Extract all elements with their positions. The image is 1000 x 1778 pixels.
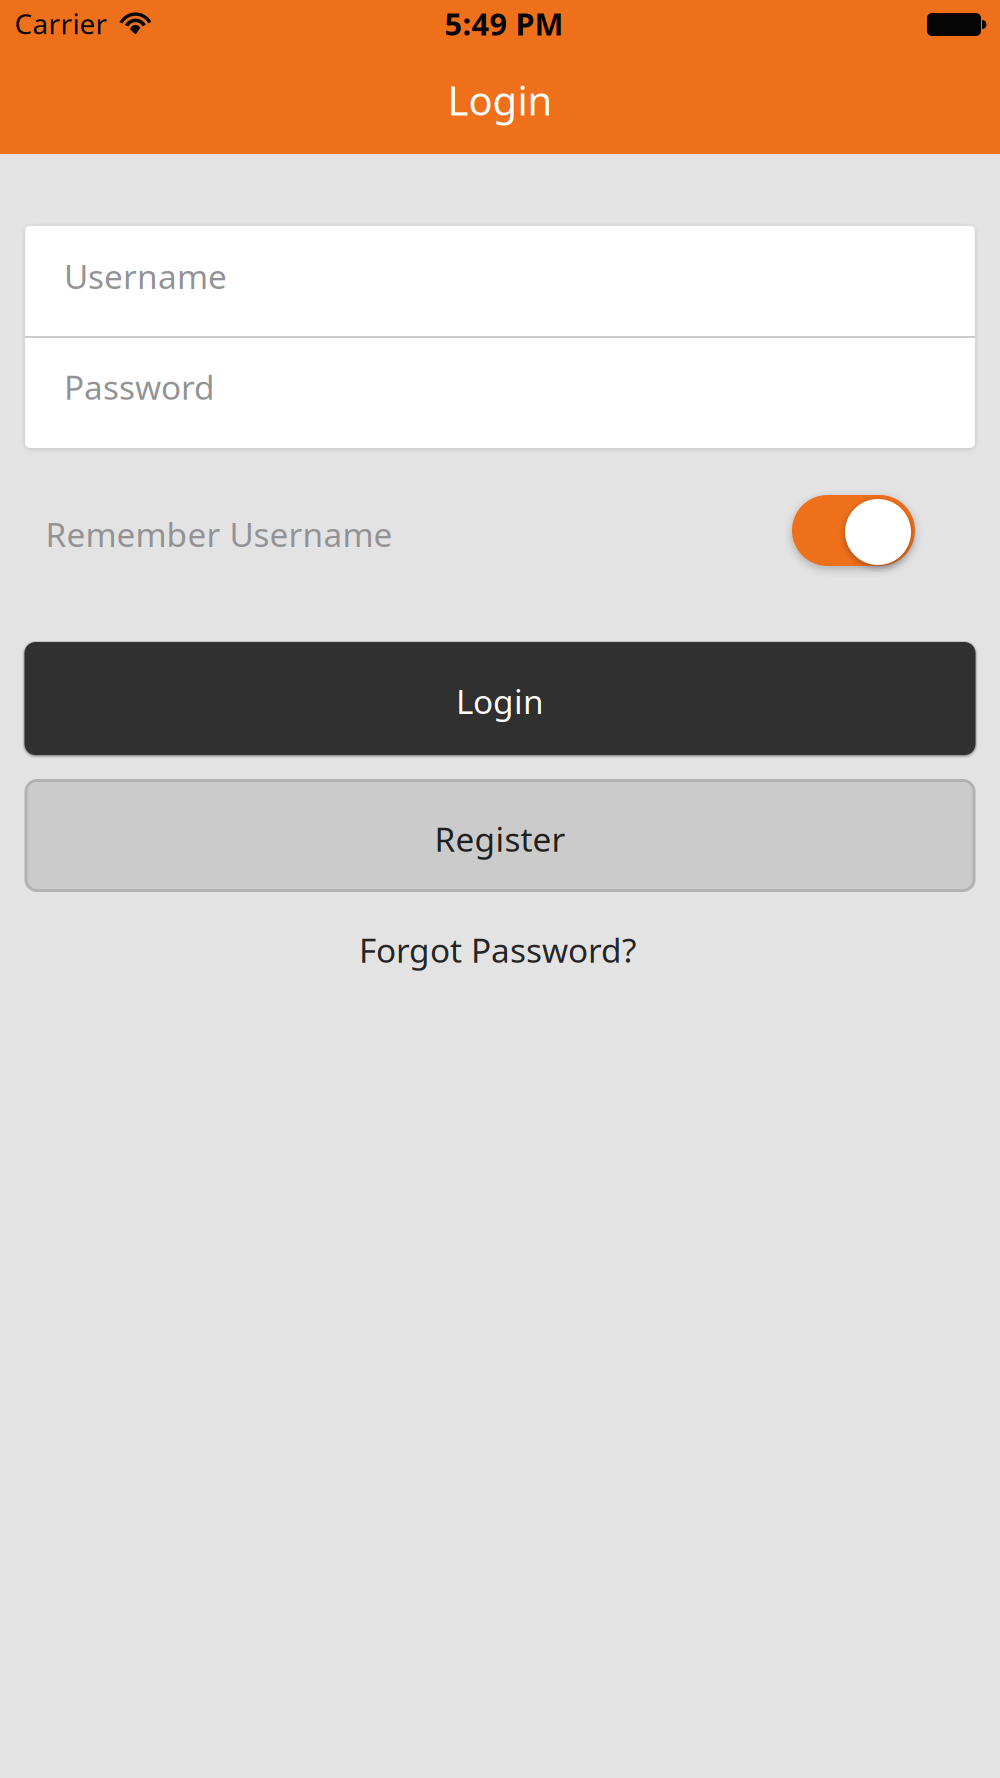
staticText: Password <box>64 364 215 409</box>
staticText: Register <box>434 816 565 862</box>
staticText: Username <box>64 253 227 299</box>
staticText: 5:49 PM <box>444 3 563 44</box>
button[interactable]: Password <box>25 338 975 448</box>
staticText: Login <box>447 73 552 127</box>
button[interactable]: Register <box>24 779 975 892</box>
button[interactable]: Login <box>24 642 975 755</box>
staticText: Login <box>456 678 544 724</box>
staticText: Carrier <box>14 4 107 42</box>
button[interactable]: Forgot Password? <box>290 913 710 993</box>
staticText: Forgot Password? <box>359 927 636 972</box>
button[interactable]: Username <box>25 226 975 336</box>
staticText: Remember Username <box>45 511 392 557</box>
button[interactable]: Remember Username <box>792 495 915 566</box>
